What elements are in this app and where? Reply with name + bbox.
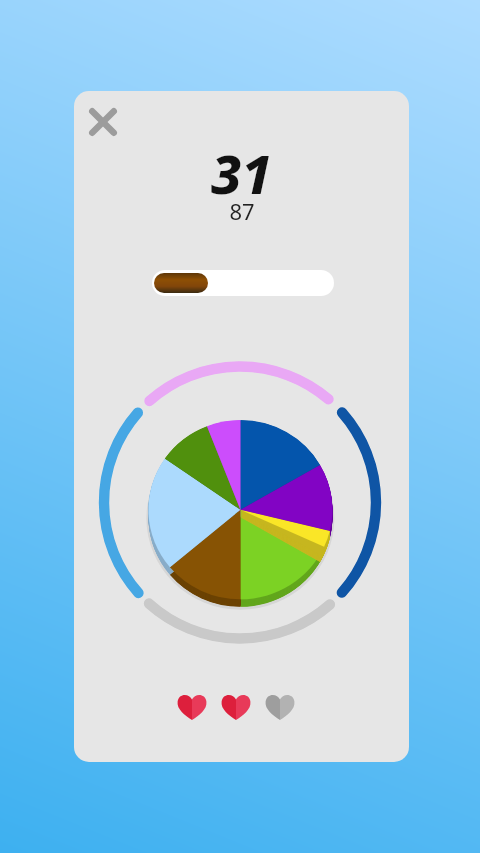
staticText: 31 <box>211 136 272 210</box>
staticText: 87 <box>229 196 255 226</box>
button[interactable] <box>154 273 332 293</box>
button[interactable]: Close <box>75 94 131 150</box>
